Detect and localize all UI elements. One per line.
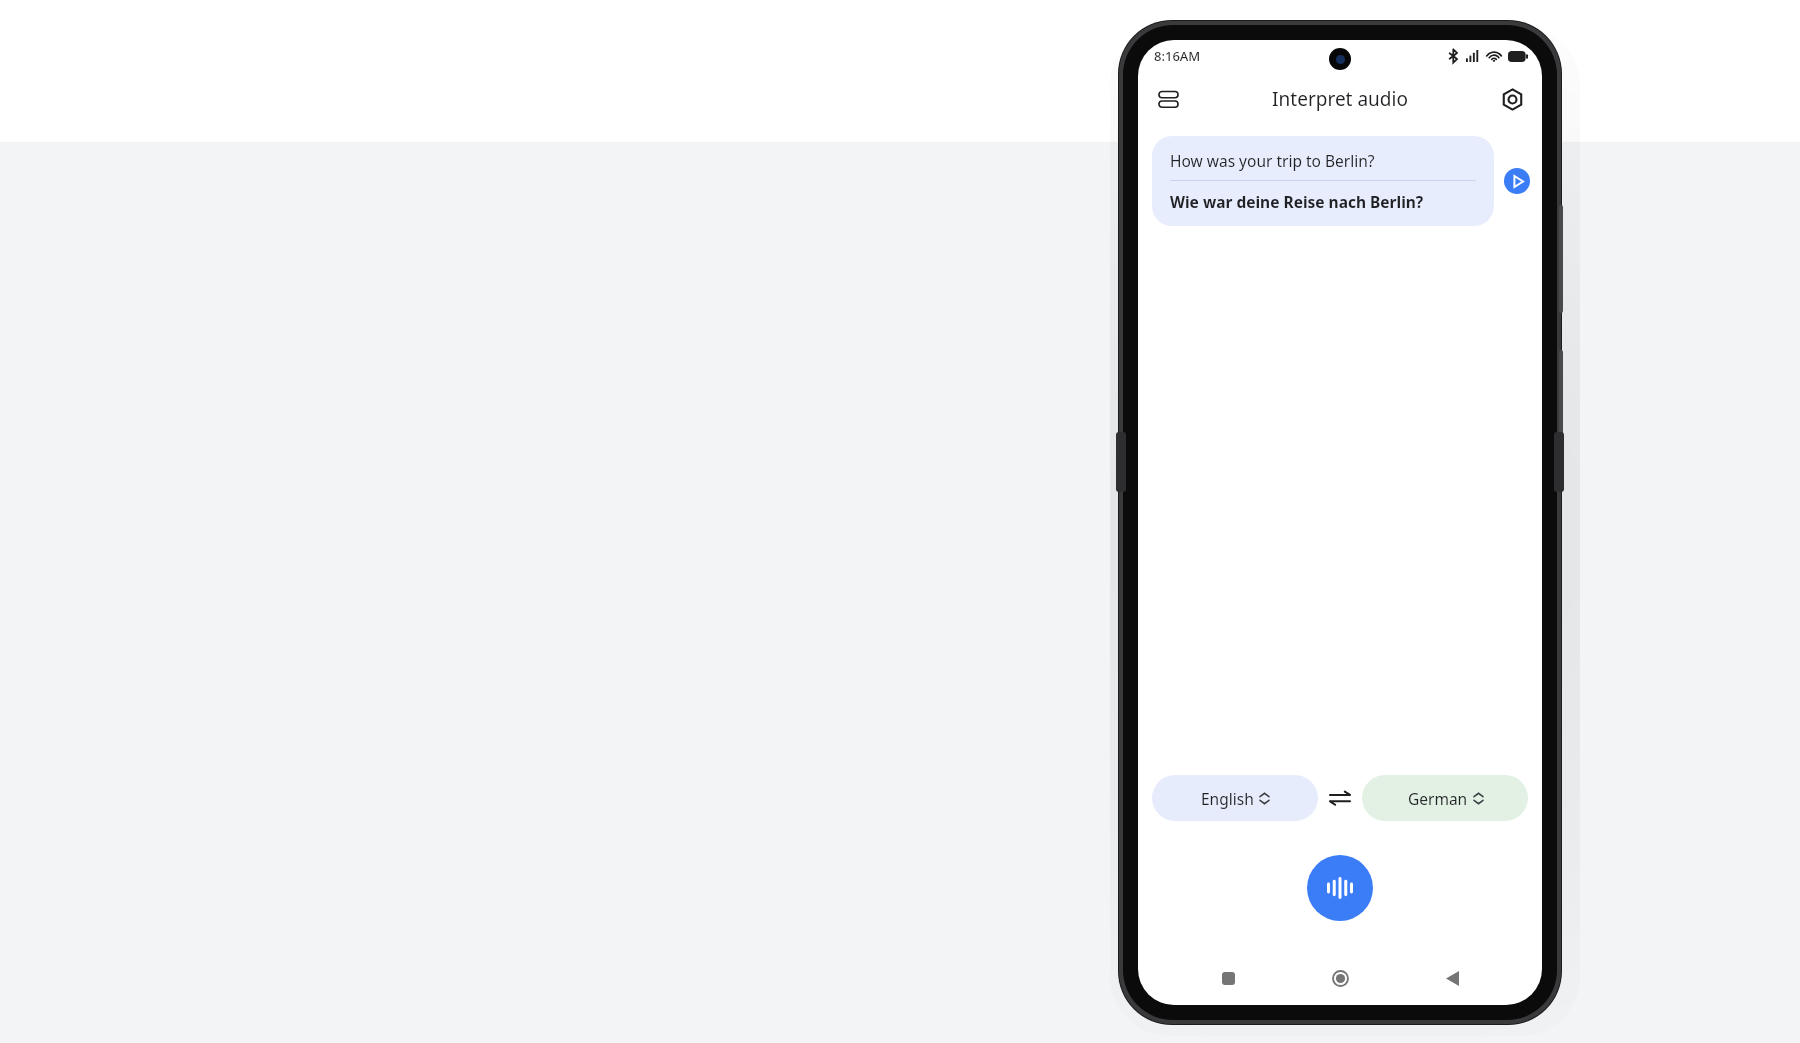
button[interactable]: Start listening xyxy=(1307,855,1373,921)
staticText: English xyxy=(1201,788,1254,809)
button[interactable]: Back xyxy=(1430,961,1474,995)
staticText: German xyxy=(1408,788,1468,809)
button[interactable]: Settings xyxy=(1490,77,1534,121)
staticText: Wie war deine Reise nach Berlin? xyxy=(1170,191,1424,212)
staticText: How was your trip to Berlin? xyxy=(1170,150,1375,171)
button[interactable]: Menu xyxy=(1146,77,1190,121)
button[interactable]: German xyxy=(1362,775,1528,821)
button[interactable]: English xyxy=(1152,775,1318,821)
button[interactable]: Recents xyxy=(1206,961,1250,995)
staticText: Interpret audio xyxy=(1272,86,1408,112)
button[interactable]: How was your trip to Berlin? xyxy=(1152,136,1494,226)
button[interactable]: Home xyxy=(1318,961,1362,995)
button[interactable]: Play translation xyxy=(1504,168,1530,194)
button[interactable]: Swap languages xyxy=(1318,776,1362,820)
staticText: 8:16AM xyxy=(1154,47,1201,65)
